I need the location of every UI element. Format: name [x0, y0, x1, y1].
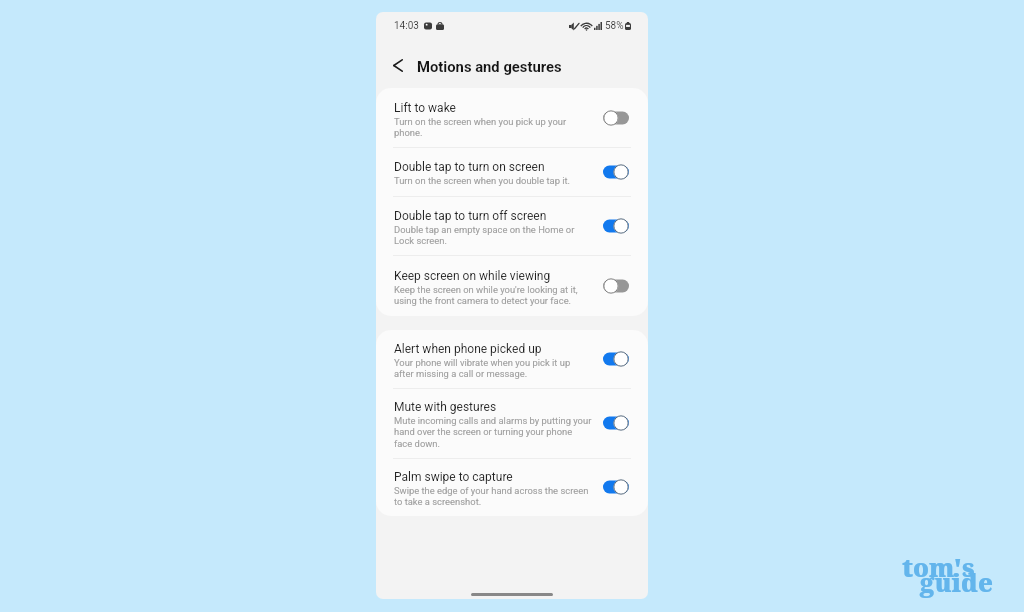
staticText: Double tap to turn off screen: [394, 209, 547, 223]
button[interactable]: Palm swipe to capture: [376, 458, 648, 516]
staticText: Palm swipe to capture: [394, 470, 513, 484]
staticText: Mute incoming calls and alarms by puttin…: [394, 415, 595, 449]
staticText: Double tap an empty space on the Home or…: [394, 224, 595, 246]
button[interactable]: Mute with gestures: [376, 388, 648, 458]
staticText: Turn on the screen when you double tap i…: [394, 175, 595, 186]
staticText: 14:03: [394, 20, 419, 32]
staticText: Mute with gestures: [394, 400, 497, 414]
staticText: Motions and gestures: [417, 58, 562, 75]
button[interactable]: Double tap to turn on screen: [376, 147, 648, 196]
staticText: Swipe the edge of your hand across the s…: [394, 485, 595, 507]
staticText: Lift to wake: [394, 101, 456, 115]
staticText: tom's: [902, 550, 975, 584]
button[interactable]: Back: [379, 43, 417, 88]
button[interactable]: Lift to wake: [376, 88, 648, 147]
staticText: Keep screen on while viewing: [394, 269, 551, 283]
staticText: Keep the screen on while you're looking …: [394, 284, 595, 306]
button[interactable]: Double tap to turn off screen: [376, 196, 648, 255]
staticText: Turn on the screen when you pick up your…: [394, 116, 595, 138]
staticText: guide: [920, 565, 993, 599]
staticText: 58%: [605, 20, 624, 32]
button[interactable]: Keep screen on while viewing: [376, 255, 648, 316]
staticText: Your phone will vibrate when you pick it…: [394, 357, 595, 379]
staticText: Double tap to turn on screen: [394, 160, 545, 174]
staticText: Alert when phone picked up: [394, 342, 542, 356]
button[interactable]: Alert when phone picked up: [376, 330, 648, 388]
